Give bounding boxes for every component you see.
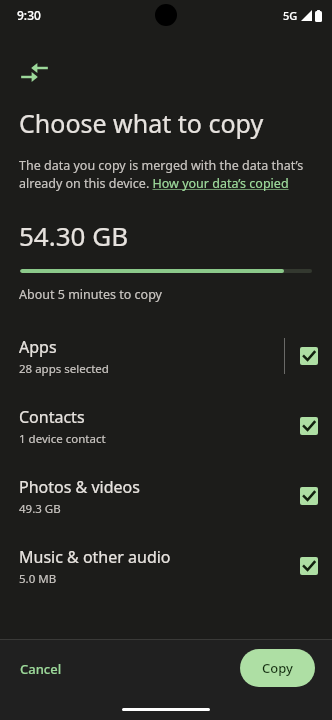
staticText: Copy	[262, 659, 293, 677]
button[interactable]: Contacts	[0, 391, 332, 461]
button[interactable]: Music & other audio	[0, 531, 332, 601]
staticText: Contacts	[19, 406, 85, 428]
staticText: 54.30 GB	[19, 218, 129, 253]
button[interactable]: Copy	[240, 649, 315, 687]
staticText: The data you copy is merged with the dat…	[19, 157, 308, 192]
staticText: Apps	[19, 336, 57, 358]
staticText: Photos & videos	[19, 476, 140, 498]
staticText: 9:30	[17, 7, 41, 23]
staticText: 49.3 GB	[19, 501, 61, 517]
button[interactable]: Transfer data	[14, 52, 54, 92]
button[interactable]: Cancel	[8, 651, 74, 687]
staticText: Music & other audio	[19, 546, 171, 568]
staticText: Cancel	[20, 660, 62, 678]
staticText: 28 apps selected	[19, 361, 109, 377]
staticText: Choose what to copy	[19, 106, 264, 140]
button[interactable]: Apps	[0, 321, 332, 391]
staticText: 1 device contact	[19, 431, 106, 447]
button[interactable]: Photos & videos	[0, 461, 332, 531]
staticText: 5.0 MB	[19, 571, 57, 587]
staticText: About 5 minutes to copy	[19, 286, 162, 303]
staticText: 5G	[283, 8, 298, 23]
